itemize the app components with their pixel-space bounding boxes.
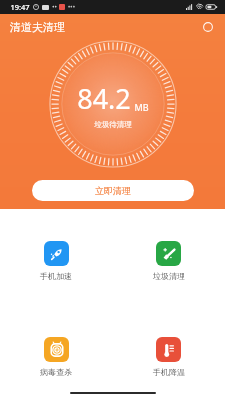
button[interactable]: Settings — [200, 19, 216, 35]
button[interactable]: 立即清理 — [32, 180, 194, 201]
staticText: 清道夫清理 — [10, 20, 65, 34]
button[interactable]: 病毒查杀 — [0, 335, 112, 379]
staticText: 立即清理 — [95, 185, 131, 196]
staticText: 垃圾清理 — [153, 271, 185, 281]
staticText: •• — [52, 3, 57, 11]
button[interactable]: 清道夫清理 — [10, 20, 65, 34]
staticText: 19:47 — [10, 2, 30, 12]
button[interactable]: 手机加速 — [0, 239, 112, 283]
staticText: 垃圾待清理 — [94, 120, 132, 129]
staticText: ••• — [68, 3, 75, 11]
staticText: MB — [134, 101, 149, 113]
staticText: 84.2 — [77, 80, 131, 117]
button[interactable]: 垃圾清理 — [112, 239, 225, 283]
button[interactable]: 84.2 — [49, 40, 177, 168]
staticText: 手机降温 — [153, 367, 185, 377]
staticText: 手机加速 — [40, 271, 72, 281]
button[interactable]: 手机降温 — [112, 335, 225, 379]
staticText: 病毒查杀 — [40, 367, 72, 377]
